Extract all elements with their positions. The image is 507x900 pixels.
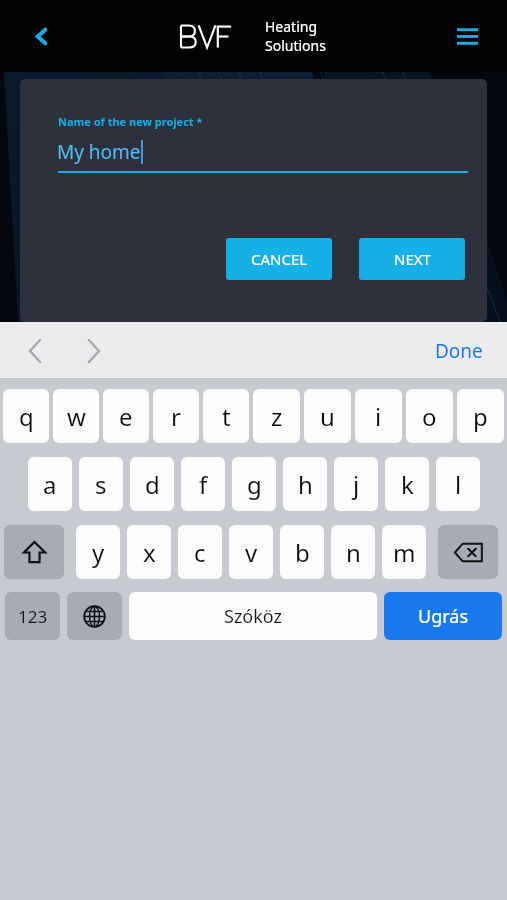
button[interactable]: j	[334, 457, 378, 511]
button[interactable]: l	[436, 457, 480, 511]
button[interactable]: Szóköz	[129, 592, 377, 640]
staticText: My home	[57, 139, 141, 165]
staticText: Ugrás	[418, 604, 469, 629]
staticText: g	[247, 468, 262, 501]
staticText: r	[171, 400, 181, 433]
staticText: h	[298, 468, 313, 501]
button[interactable]: d	[130, 457, 174, 511]
button[interactable]: 123	[5, 592, 60, 640]
button[interactable]: n	[331, 525, 375, 579]
button[interactable]: q	[3, 389, 49, 443]
button[interactable]: Change keyboard	[67, 592, 122, 640]
staticText: l	[455, 468, 462, 501]
staticText: u	[320, 400, 335, 433]
staticText: e	[119, 400, 133, 433]
button[interactable]: z	[253, 389, 300, 443]
button[interactable]: i	[355, 389, 402, 443]
staticText: f	[199, 468, 208, 501]
button[interactable]: w	[53, 389, 99, 443]
button[interactable]: k	[385, 457, 429, 511]
staticText: d	[145, 468, 160, 501]
staticText: b	[295, 536, 310, 569]
button[interactable]: CANCEL	[226, 238, 332, 280]
staticText: Szóköz	[224, 604, 283, 629]
button[interactable]: Shift	[4, 525, 64, 579]
staticText: c	[194, 536, 206, 569]
button[interactable]: o	[406, 389, 453, 443]
staticText: x	[143, 536, 156, 569]
button[interactable]: y	[76, 525, 120, 579]
button[interactable]: Back	[20, 15, 62, 57]
staticText: NEXT	[394, 249, 431, 269]
staticText: o	[422, 400, 437, 433]
button[interactable]: t	[203, 389, 249, 443]
staticText: i	[375, 400, 382, 433]
button[interactable]: a	[28, 457, 72, 511]
button[interactable]: e	[103, 389, 149, 443]
button[interactable]: Previous field	[18, 334, 52, 368]
staticText: j	[353, 468, 360, 501]
button[interactable]: p	[457, 389, 504, 443]
button[interactable]: v	[229, 525, 273, 579]
staticText: CANCEL	[251, 249, 308, 269]
staticText: z	[271, 400, 283, 433]
staticText: 123	[18, 605, 48, 628]
staticText: v	[245, 536, 258, 569]
button[interactable]: s	[79, 457, 123, 511]
staticText: n	[346, 536, 361, 569]
button[interactable]: f	[181, 457, 225, 511]
button[interactable]: m	[382, 525, 426, 579]
staticText: t	[222, 400, 231, 433]
button[interactable]: c	[178, 525, 222, 579]
staticText: y	[92, 536, 105, 569]
staticText: m	[393, 536, 416, 569]
button[interactable]: g	[232, 457, 276, 511]
button[interactable]: Backspace	[438, 525, 498, 579]
button[interactable]: Ugrás	[384, 592, 502, 640]
staticText: w	[67, 400, 86, 433]
button[interactable]: h	[283, 457, 327, 511]
button[interactable]: b	[280, 525, 324, 579]
button[interactable]: Done	[429, 332, 489, 370]
staticText: Heating	[265, 17, 318, 36]
staticText: s	[95, 468, 107, 501]
staticText: Done	[435, 338, 483, 364]
button[interactable]: r	[153, 389, 199, 443]
button[interactable]: u	[304, 389, 351, 443]
staticText: a	[43, 468, 57, 501]
button[interactable]: NEXT	[359, 238, 465, 280]
button[interactable]: Menu	[446, 15, 488, 57]
button[interactable]: Next field	[76, 334, 110, 368]
staticText: Solutions	[265, 36, 326, 55]
staticText: q	[19, 400, 34, 433]
button[interactable]: x	[127, 525, 171, 579]
staticText: k	[401, 468, 414, 501]
staticText: p	[473, 400, 488, 433]
staticText: Name of the new project *	[58, 114, 203, 129]
